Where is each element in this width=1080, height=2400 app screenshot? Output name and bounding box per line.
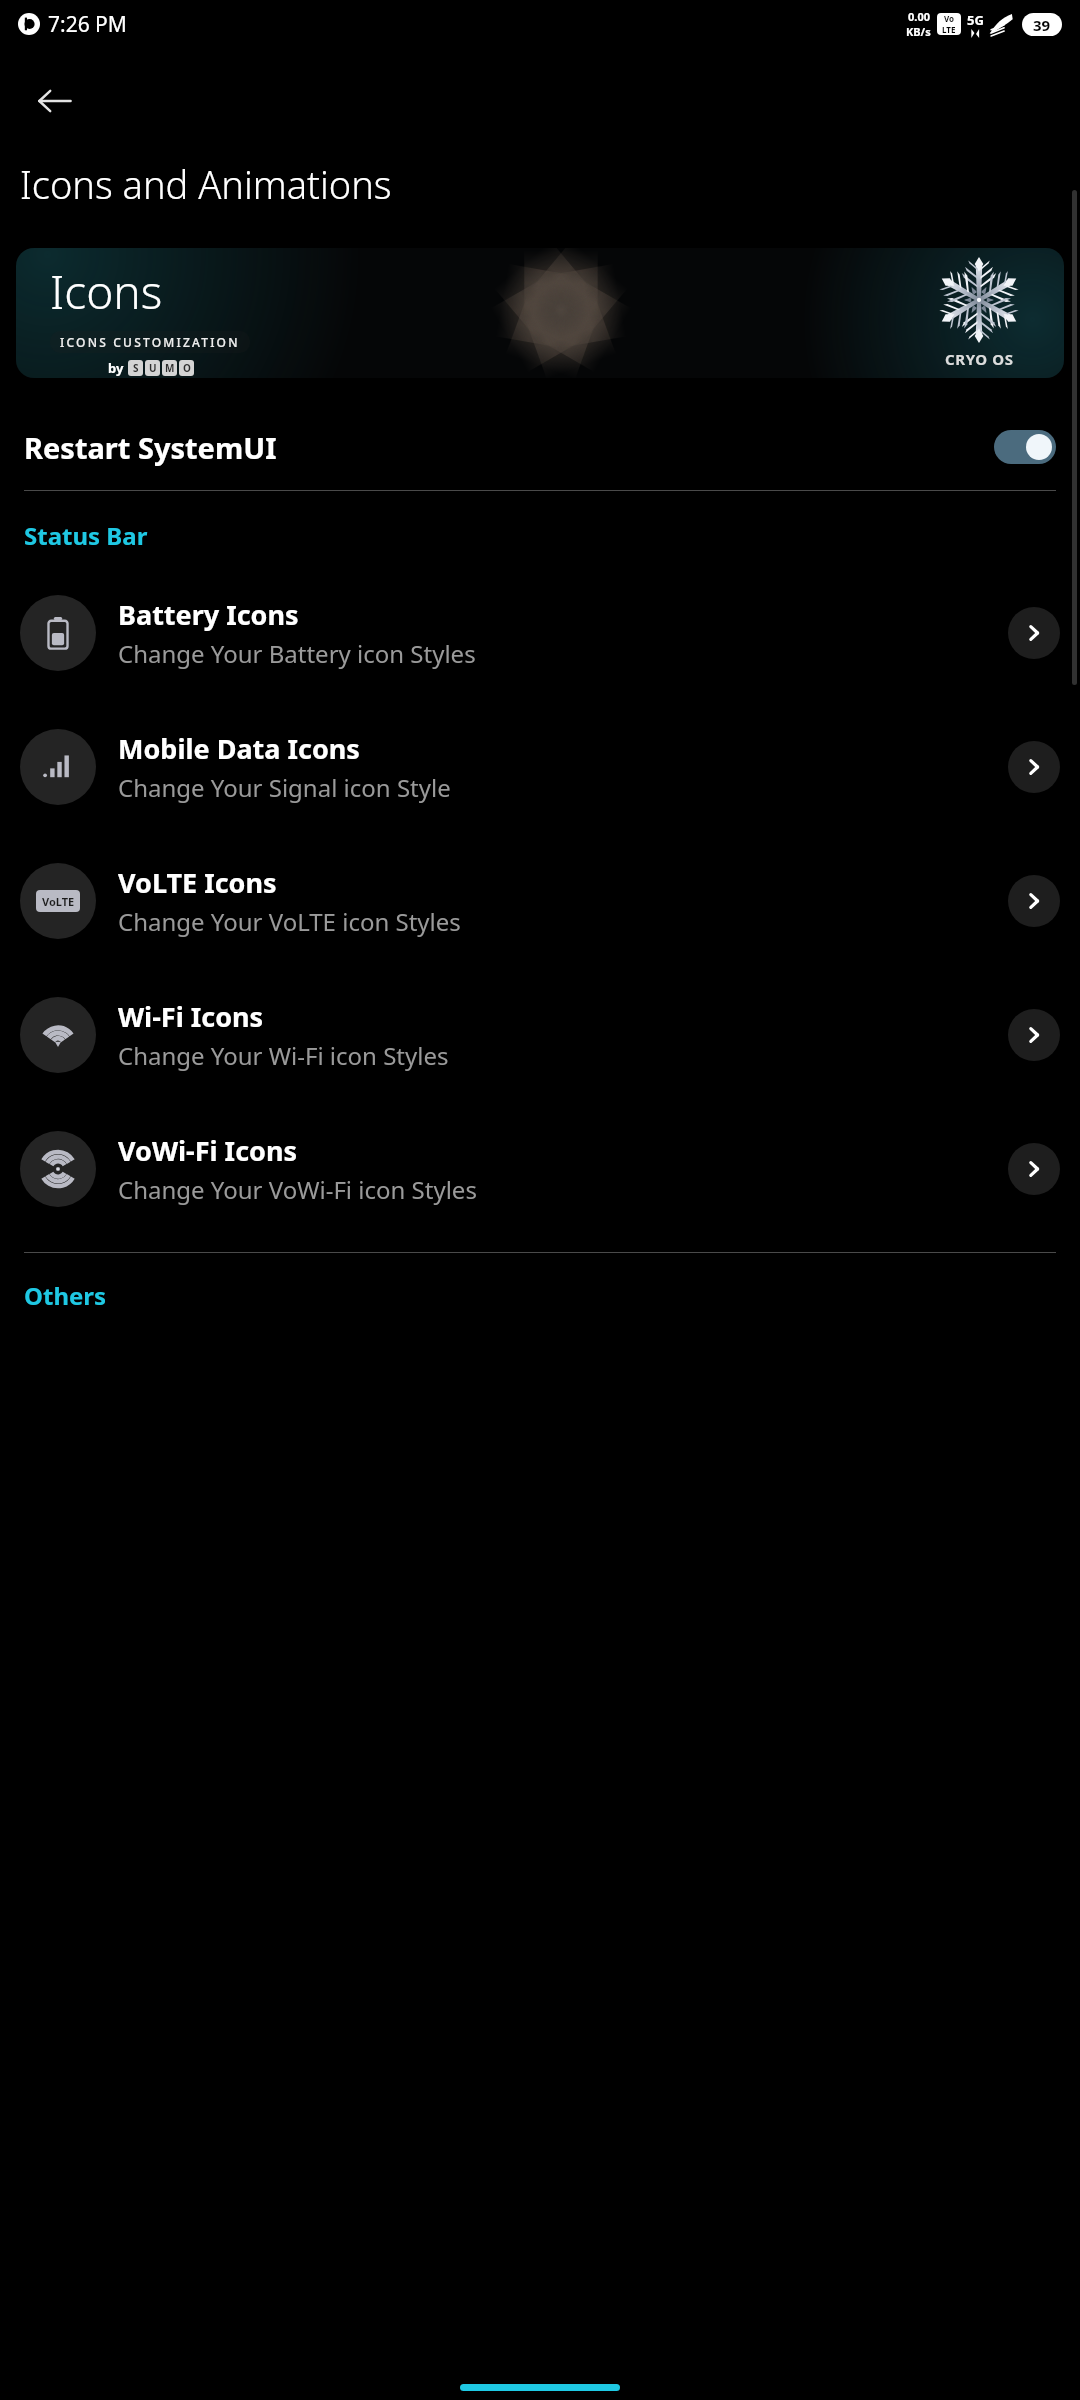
button[interactable]: VoWi-Fi Icons (1008, 1143, 1060, 1195)
staticText: Icons and Animations (20, 158, 392, 210)
staticText: 0.00 (908, 9, 930, 24)
staticText: Status Bar (24, 519, 148, 552)
staticText: VoWi-Fi Icons (118, 1132, 298, 1169)
staticText: ICONS CUSTOMIZATION (60, 334, 240, 350)
staticText: Mobile Data Icons (118, 730, 360, 767)
button[interactable]: VoWi-Fi Icons (0, 1102, 1080, 1236)
staticText: S (133, 361, 139, 375)
staticText: Change Your VoWi-Fi icon Styles (118, 1173, 477, 1206)
staticText: VoLTE (42, 894, 75, 909)
staticText: Change Your Signal icon Style (118, 771, 451, 804)
staticText: O (183, 361, 191, 375)
button[interactable]: Battery Icons (0, 566, 1080, 700)
button[interactable]: VoLTE (0, 834, 1080, 968)
button[interactable]: Restart SystemUI (0, 404, 1080, 490)
staticText: 5G (967, 11, 984, 29)
staticText: by (108, 359, 124, 377)
staticText: Vo (944, 13, 955, 24)
staticText: M (165, 361, 175, 375)
staticText: Others (24, 1279, 107, 1312)
staticText: Icons (50, 260, 163, 323)
button[interactable]: Back (10, 68, 100, 134)
staticText: Change Your Battery icon Styles (118, 637, 476, 670)
staticText: Wi-Fi Icons (118, 998, 264, 1035)
staticText: U (149, 361, 157, 375)
button[interactable]: Icons (16, 248, 1064, 378)
button[interactable]: Wi-Fi Icons (0, 968, 1080, 1102)
staticText: 39 (1033, 15, 1051, 35)
staticText: VoLTE Icons (118, 864, 277, 901)
button[interactable]: Mobile Data Icons (0, 700, 1080, 834)
staticText: LTE (942, 24, 956, 35)
staticText: Restart SystemUI (24, 428, 277, 467)
staticText: 7:26 PM (48, 10, 127, 39)
staticText: CRYO OS (945, 349, 1014, 369)
staticText: KB/s (906, 24, 931, 39)
button[interactable]: Wi-Fi Icons (1008, 1009, 1060, 1061)
button[interactable]: Mobile Data Icons (1008, 741, 1060, 793)
staticText: Change Your VoLTE icon Styles (118, 905, 461, 938)
button[interactable]: Battery Icons (1008, 607, 1060, 659)
staticText: Change Your Wi-Fi icon Styles (118, 1039, 449, 1072)
staticText: Battery Icons (118, 596, 299, 633)
button[interactable]: VoLTE Icons (1008, 875, 1060, 927)
